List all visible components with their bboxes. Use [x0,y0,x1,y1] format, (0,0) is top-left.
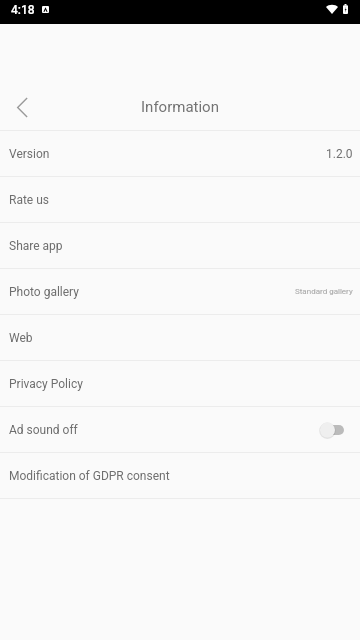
staticText: Ad sound off [9,423,78,437]
button[interactable]: Web [0,315,360,360]
staticText: Standard gallery [295,287,353,296]
button[interactable]: Ad sound off [0,407,360,452]
staticText: Information [141,98,219,116]
button[interactable]: Modification of GDPR consent [0,453,360,498]
button[interactable]: Rate us [0,177,360,222]
staticText: 1.2.0 [326,147,353,161]
staticText: Rate us [9,193,49,207]
staticText: Version [9,147,50,161]
staticText: Privacy Policy [9,377,83,391]
button[interactable]: Share app [0,223,360,268]
button[interactable]: Back [0,85,44,129]
button[interactable]: Ad sound off toggle [317,415,353,445]
staticText: 4:18 [11,3,35,17]
button[interactable]: Privacy Policy [0,361,360,406]
staticText: Web [9,331,33,345]
staticText: Photo gallery [9,285,79,299]
button[interactable]: Version [0,131,360,176]
button[interactable]: Photo gallery [0,269,360,314]
staticText: Share app [9,239,63,253]
staticText: Modification of GDPR consent [9,469,170,483]
